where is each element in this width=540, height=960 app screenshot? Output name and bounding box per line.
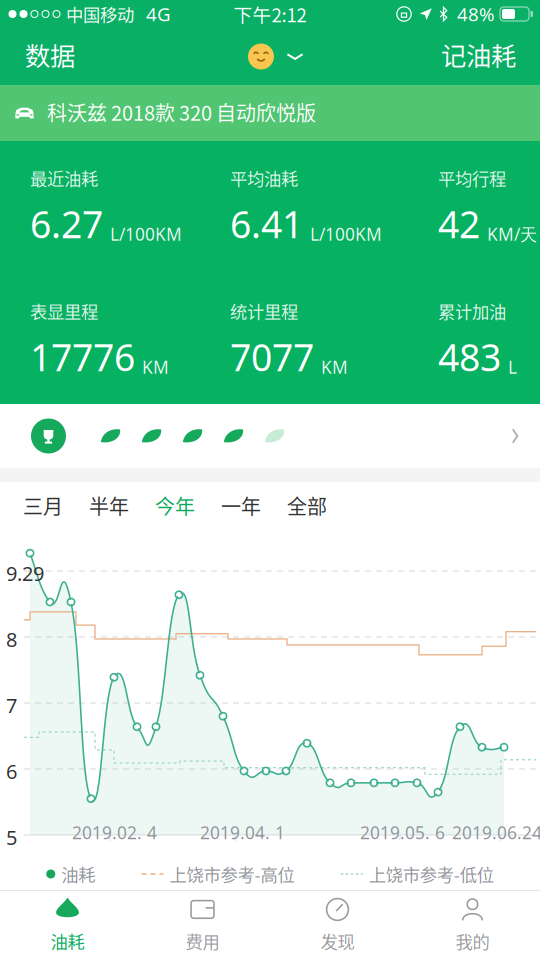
staticText: 油耗 xyxy=(61,861,95,887)
staticText: 我的 xyxy=(455,928,489,954)
button[interactable]: 发现 xyxy=(270,890,405,960)
staticText: 三月 xyxy=(23,491,63,520)
button[interactable]: 全部 xyxy=(274,482,340,529)
staticText: 一年 xyxy=(221,491,261,520)
staticText: 记油耗 xyxy=(441,36,516,73)
staticText: 平均行程 xyxy=(438,165,506,191)
button[interactable]: 科沃兹 2018款 320 自动欣悦版 xyxy=(0,85,540,141)
button[interactable]: 半年 xyxy=(76,482,142,529)
button[interactable]: 一年 xyxy=(208,482,274,529)
staticText: 2019.06.24 xyxy=(452,821,540,844)
staticText: 科沃兹 2018款 320 自动欣悦版 xyxy=(47,97,316,126)
button[interactable]: 三月 xyxy=(10,482,76,529)
staticText: 483 xyxy=(438,332,501,382)
staticText: 6 xyxy=(6,758,17,785)
button[interactable] xyxy=(0,404,540,468)
staticText: 统计里程 xyxy=(230,298,298,324)
staticText: 发现 xyxy=(320,928,354,954)
staticText: 全部 xyxy=(287,491,327,520)
staticText: 7077 xyxy=(230,332,314,382)
button[interactable]: 我的 xyxy=(405,890,540,960)
staticText: 7 xyxy=(6,692,17,719)
button[interactable]: 今年 xyxy=(142,482,208,529)
staticText: 今年 xyxy=(155,491,195,520)
staticText: 上饶市参考-低位 xyxy=(369,861,494,887)
staticText: 8 xyxy=(6,626,17,653)
staticText: 6.41 xyxy=(230,199,303,249)
staticText: L/100KM xyxy=(110,223,182,246)
staticText: 上饶市参考-高位 xyxy=(169,861,294,887)
button[interactable]: 费用 xyxy=(135,890,270,960)
staticText: 下午2:12 xyxy=(233,0,306,27)
staticText: 累计加油 xyxy=(438,298,506,324)
staticText: 4G xyxy=(146,2,171,26)
staticText: KM xyxy=(321,356,348,379)
staticText: 42 xyxy=(438,199,480,249)
staticText: 2019.02. 4 xyxy=(72,821,157,844)
staticText: 表显里程 xyxy=(30,298,98,324)
staticText: 5 xyxy=(6,824,17,851)
staticText: 17776 xyxy=(30,332,135,382)
staticText: 6.27 xyxy=(30,199,103,249)
staticText: 9.29 xyxy=(6,560,44,587)
staticText: 半年 xyxy=(89,491,129,520)
button[interactable]: 记油耗 xyxy=(417,28,540,85)
staticText: L/100KM xyxy=(310,223,382,246)
staticText: 油耗 xyxy=(50,928,84,954)
staticText: 中国移动 xyxy=(66,1,134,27)
staticText: L xyxy=(508,356,517,379)
staticText: 48% xyxy=(457,2,495,26)
staticText: KM xyxy=(142,356,169,379)
button[interactable]: 油耗 xyxy=(0,890,135,960)
staticText: 费用 xyxy=(185,928,219,954)
staticText: 平均油耗 xyxy=(230,165,298,191)
staticText: 2019.05. 6 xyxy=(360,821,445,844)
staticText: 最近油耗 xyxy=(30,165,98,191)
staticText: KM/天 xyxy=(487,222,537,246)
button[interactable]: 数据 xyxy=(0,28,100,85)
button[interactable]: Switch vehicle xyxy=(240,28,312,85)
staticText: 2019.04. 1 xyxy=(200,821,285,844)
staticText: 数据 xyxy=(25,36,75,73)
